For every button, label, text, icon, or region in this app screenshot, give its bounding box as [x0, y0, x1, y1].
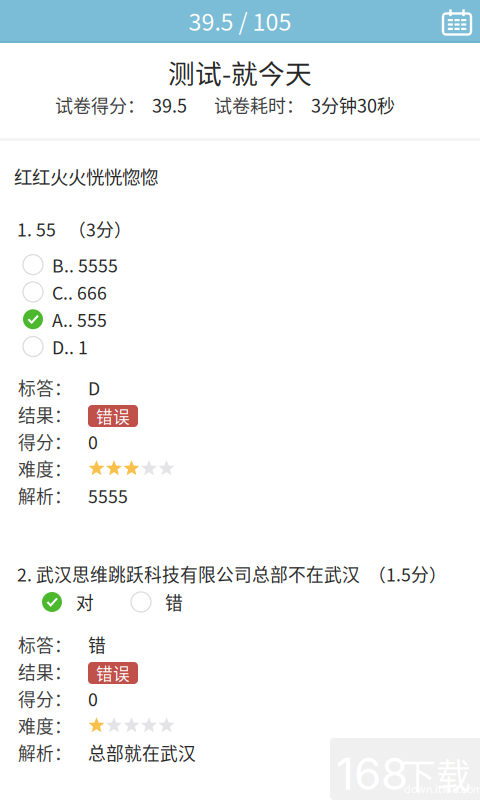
staticText: 错误: [96, 661, 130, 685]
staticText: 5555: [88, 483, 128, 508]
staticText: 39.5: [152, 92, 187, 118]
staticText: 1. 55 （3分）: [17, 216, 132, 242]
staticText: D.. 1: [52, 334, 88, 359]
staticText: 2. 武汉思维跳跃科技有限公司总部不在武汉 （1.5分）: [17, 561, 447, 587]
staticText: B.. 5555: [52, 252, 118, 277]
staticText: 下载: [401, 749, 471, 799]
staticText: 得分：: [18, 686, 72, 711]
staticText: C.. 666: [52, 279, 107, 305]
staticText: 39.5 / 105: [188, 4, 291, 37]
staticText: 错: [165, 589, 183, 615]
staticText: 得分：: [18, 429, 72, 454]
staticText: 对: [76, 589, 94, 615]
staticText: down.it168.com: [404, 783, 480, 796]
button[interactable]: Answer sheet: [433, 1, 480, 41]
staticText: A.. 555: [52, 306, 107, 332]
staticText: 0: [88, 429, 98, 454]
staticText: 红红火火恍恍惚惚: [14, 163, 158, 190]
staticText: 168: [336, 747, 408, 800]
staticText: 解析：: [18, 740, 72, 765]
button[interactable]: 对: [42, 591, 94, 613]
staticText: 难度：: [18, 456, 72, 481]
staticText: 错: [88, 632, 106, 657]
staticText: 0: [88, 686, 98, 711]
staticText: 总部就在武汉: [88, 740, 196, 765]
staticText: 3分钟30秒: [311, 92, 395, 118]
button[interactable]: D.. 1: [23, 333, 463, 360]
staticText: 试卷耗时：: [214, 92, 304, 118]
button[interactable]: 错: [131, 591, 183, 613]
staticText: D: [88, 375, 100, 400]
staticText: 错误: [96, 404, 130, 428]
staticText: 标答：: [18, 632, 72, 657]
staticText: 解析：: [18, 483, 72, 508]
button[interactable]: C.. 666: [23, 278, 463, 306]
staticText: 结果：: [18, 659, 72, 684]
staticText: 测试-就今天: [168, 53, 312, 91]
staticText: 试卷得分：: [55, 92, 145, 118]
staticText: 结果：: [18, 402, 72, 427]
staticText: 难度：: [18, 713, 72, 738]
button[interactable]: B.. 5555: [23, 251, 463, 278]
button[interactable]: A.. 555: [23, 306, 463, 333]
staticText: 标答：: [18, 375, 72, 400]
